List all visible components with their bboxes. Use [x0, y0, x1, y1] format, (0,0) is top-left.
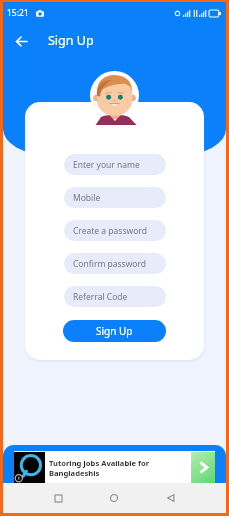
- button[interactable]: Sign Up: [63, 320, 166, 342]
- button[interactable]: Home: [100, 484, 128, 512]
- staticText: Sign Up: [96, 324, 133, 338]
- button[interactable]: Enter your name: [64, 154, 166, 175]
- button[interactable]: Referral Code: [64, 286, 166, 307]
- button[interactable]: Back: [157, 484, 185, 512]
- button[interactable]: Confirm password: [64, 253, 166, 274]
- button[interactable]: Mobile: [64, 187, 166, 208]
- staticText: Sign Up: [48, 32, 94, 49]
- button[interactable]: Create a password: [64, 220, 166, 241]
- button[interactable]: Open advertisement: [191, 452, 215, 483]
- button[interactable]: Recent apps: [44, 484, 72, 512]
- staticText: Tutoring Jobs Available for: [49, 458, 150, 468]
- staticText: Bangladeshis: [49, 468, 100, 478]
- staticText: 15:21: [7, 7, 29, 19]
- staticText: Referral Code: [73, 291, 128, 303]
- staticText: Confirm password: [73, 258, 147, 270]
- staticText: Mobile: [73, 192, 101, 204]
- staticText: Enter your name: [73, 159, 140, 171]
- button[interactable]: Back: [10, 30, 32, 52]
- staticText: Create a password: [73, 225, 147, 237]
